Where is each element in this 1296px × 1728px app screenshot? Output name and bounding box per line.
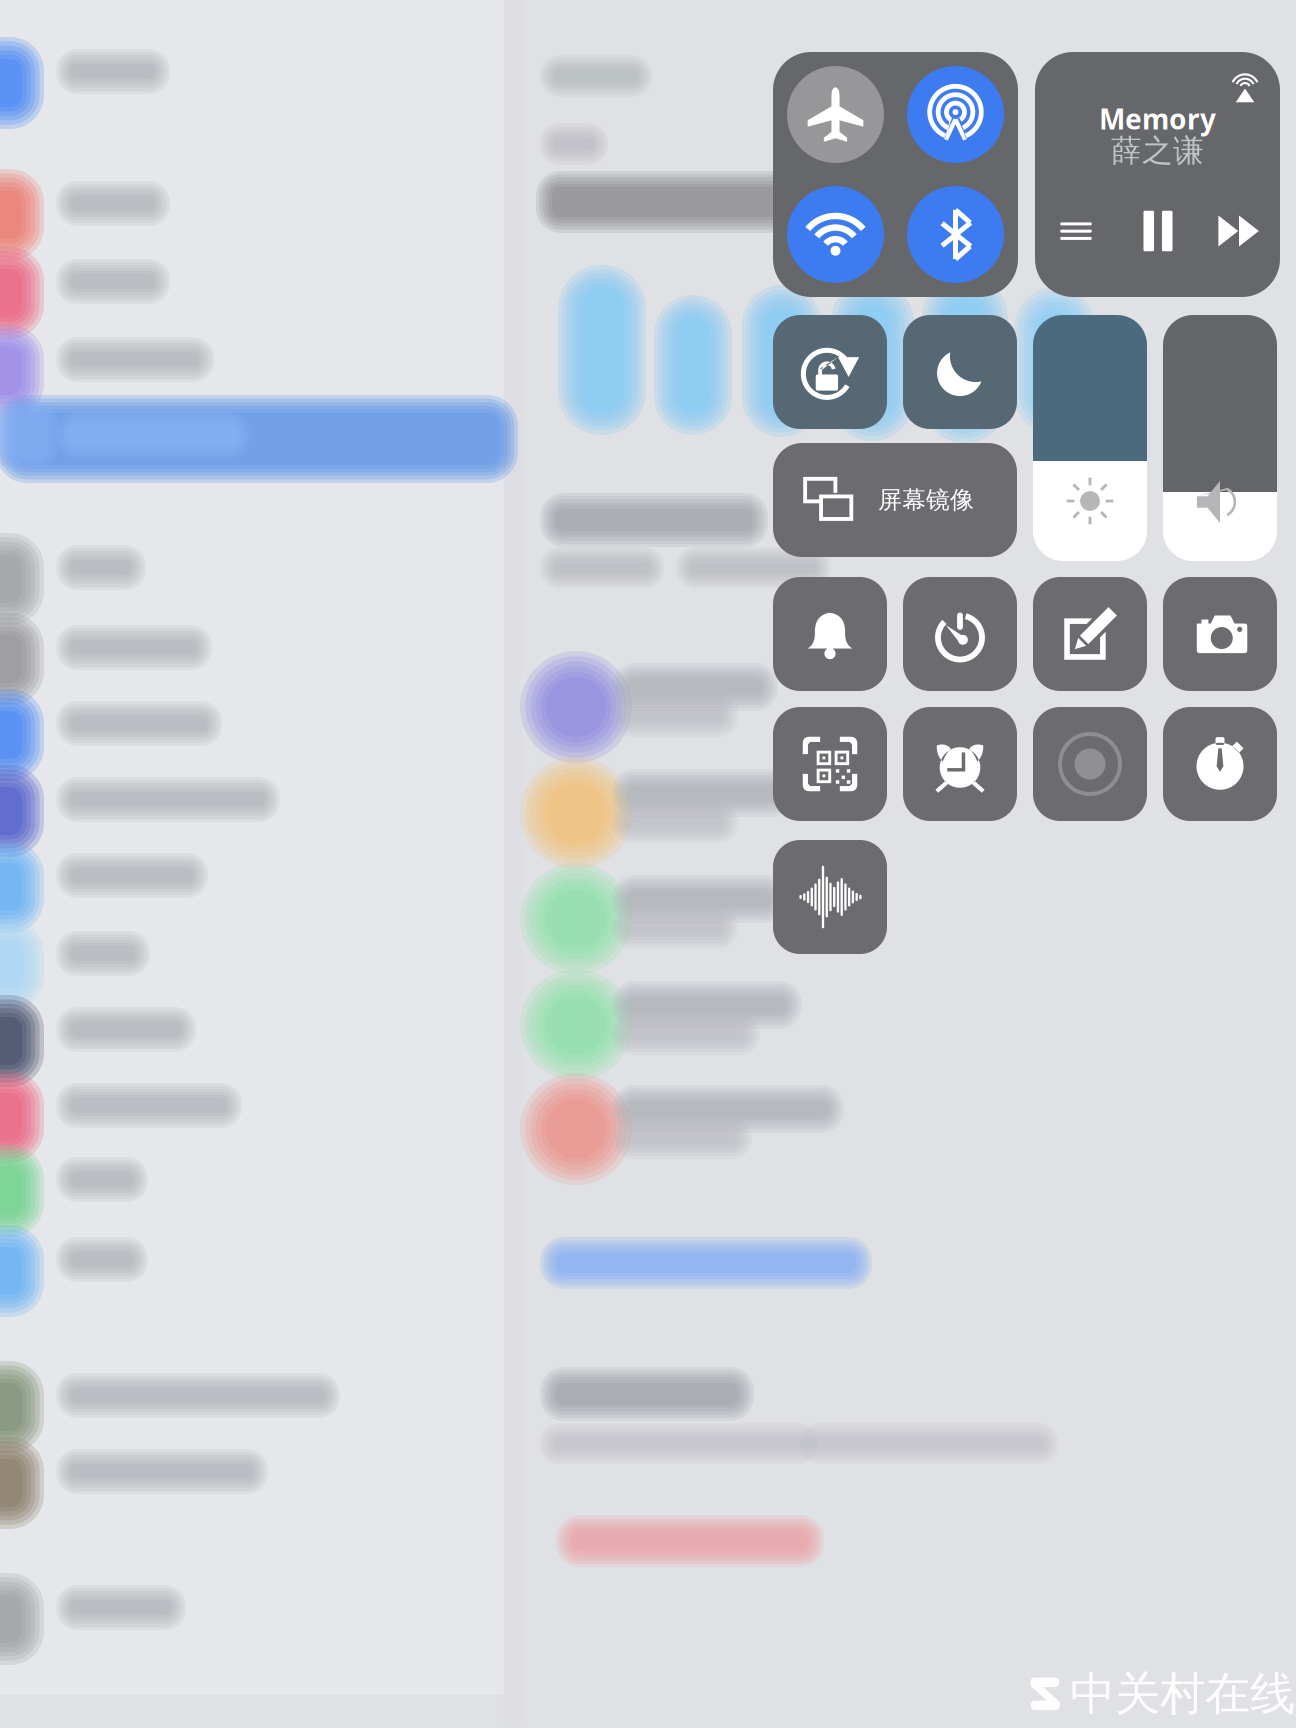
staticText: 薛之谦 (1111, 132, 1204, 170)
button[interactable]: Brightness (1033, 315, 1147, 561)
button[interactable]: Screen Mirroring (773, 443, 1017, 557)
button[interactable]: Next (1215, 207, 1263, 255)
button[interactable]: AirDrop (901, 60, 1009, 168)
staticText: Memory (1099, 100, 1216, 137)
staticText: 屏幕镜像 (878, 485, 974, 515)
button[interactable]: Notes (1033, 577, 1147, 691)
button[interactable]: Scan QR Code (773, 707, 887, 821)
button[interactable]: Alerts (773, 577, 887, 691)
button[interactable]: Rotation Lock (773, 315, 887, 429)
button[interactable]: Pause (1134, 207, 1182, 255)
button[interactable]: AirPlay (1224, 67, 1266, 109)
button[interactable]: Volume (1163, 315, 1277, 561)
button[interactable]: Camera (1163, 577, 1277, 691)
staticText: 中关村在线 (1070, 1666, 1295, 1722)
button[interactable]: Do Not Disturb (903, 315, 1017, 429)
button[interactable]: Timer (903, 577, 1017, 691)
button[interactable]: Voice Memos (773, 840, 887, 954)
button[interactable]: Up Next (1052, 207, 1100, 255)
button[interactable]: Airplane Mode (781, 60, 889, 168)
button[interactable]: Bluetooth (901, 180, 1009, 288)
button[interactable]: Alarm (903, 707, 1017, 821)
button[interactable]: Stopwatch (1163, 707, 1277, 821)
button[interactable]: Screen Recording (1033, 707, 1147, 821)
button[interactable]: Wi-Fi (781, 180, 889, 288)
